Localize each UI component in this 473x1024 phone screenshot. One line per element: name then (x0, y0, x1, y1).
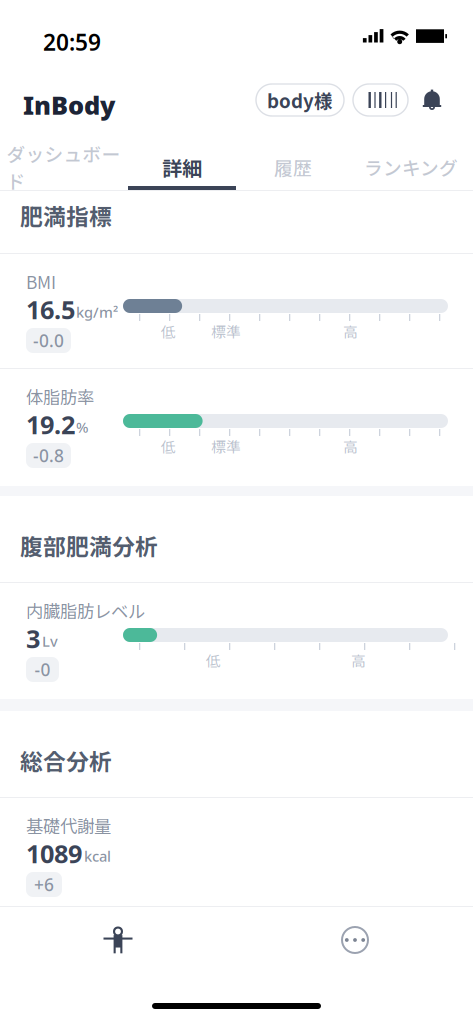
staticText: 3 (26, 622, 40, 655)
staticText: -0.8 (33, 444, 64, 467)
staticText: % (76, 417, 88, 437)
button[interactable]: Body measurements (86, 916, 150, 964)
staticText: 標準 (211, 435, 241, 457)
staticText: 詳細 (162, 152, 202, 181)
button[interactable]: body様 (256, 84, 344, 116)
staticText: 内臓脂肪レベル (26, 598, 145, 623)
staticText: -0 (34, 658, 50, 681)
staticText: 体脂肪率 (26, 384, 94, 409)
staticText: 腹部肥満分析 (20, 529, 158, 562)
staticText: 標準 (211, 320, 241, 342)
staticText: InBody (23, 88, 115, 122)
staticText: kg/m² (76, 302, 118, 322)
staticText: 20:59 (43, 27, 101, 57)
staticText: BMI (26, 269, 56, 294)
staticText: 19.2 (26, 408, 75, 441)
staticText: 高 (343, 320, 358, 342)
staticText: 基礎代謝量 (26, 813, 111, 838)
staticText: 低 (161, 320, 176, 342)
staticText: ダッシュボード (6, 140, 120, 194)
button[interactable]: ダッシュボード (0, 137, 127, 190)
staticText: ランキング (364, 153, 458, 180)
button[interactable]: 履歴 (237, 137, 349, 190)
staticText: Lv (42, 631, 58, 651)
staticText: 肥満指標 (20, 199, 112, 232)
button[interactable]: Notifications (415, 84, 449, 116)
staticText: body様 (267, 86, 333, 113)
staticText: 低 (161, 435, 176, 457)
staticText: 16.5 (26, 293, 75, 326)
staticText: 1089 (26, 837, 82, 870)
button[interactable]: 詳細 (127, 137, 237, 190)
staticText: 総合分析 (20, 744, 112, 777)
button[interactable]: ランキング (349, 137, 473, 190)
button[interactable]: More (323, 916, 387, 964)
staticText: 高 (343, 435, 358, 457)
staticText: -0.0 (33, 329, 64, 352)
staticText: +6 (34, 873, 54, 896)
staticText: 低 (206, 649, 221, 671)
staticText: kcal (84, 846, 111, 866)
button[interactable]: Barcode (353, 84, 408, 116)
staticText: 履歴 (274, 153, 312, 180)
staticText: 高 (351, 649, 366, 671)
